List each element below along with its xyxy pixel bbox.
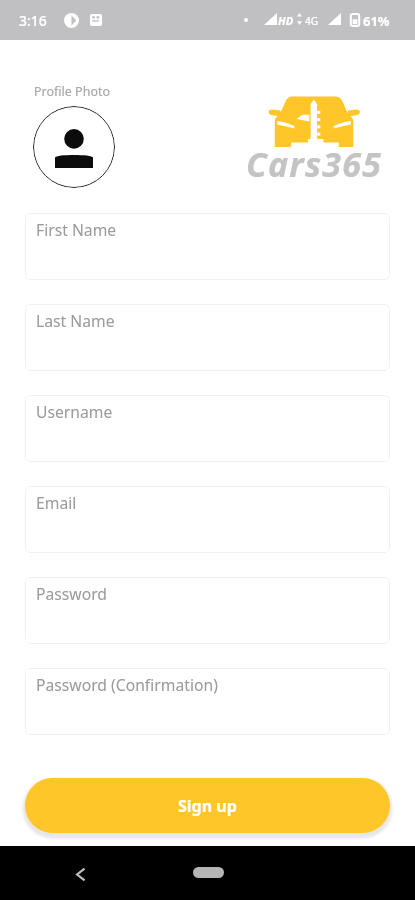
staticText: Last Name <box>36 310 115 331</box>
button[interactable]: Last Name <box>25 304 390 371</box>
staticText: 4G <box>305 14 318 28</box>
button[interactable]: Sign up <box>25 778 390 833</box>
staticText: Email <box>36 492 77 513</box>
staticText: 61% <box>363 12 390 30</box>
staticText: Sign up <box>178 795 237 817</box>
button[interactable]: Profile Photo <box>33 106 115 188</box>
button[interactable]: Email <box>25 486 390 553</box>
button[interactable]: Home <box>193 867 224 878</box>
button[interactable]: First Name <box>25 213 390 280</box>
button[interactable]: Username <box>25 395 390 462</box>
button[interactable]: Back <box>66 860 94 888</box>
button[interactable]: Password (Confirmation) <box>25 668 390 735</box>
staticText: 3:16 <box>19 11 47 30</box>
button[interactable]: Password <box>25 577 390 644</box>
staticText: Cars365 <box>246 141 383 187</box>
staticText: Profile Photo <box>34 83 111 100</box>
staticText: Username <box>36 401 113 422</box>
staticText: First Name <box>36 219 117 240</box>
staticText: Password <box>36 583 107 604</box>
staticText: Password (Confirmation) <box>36 674 218 695</box>
staticText: HD <box>278 13 294 28</box>
